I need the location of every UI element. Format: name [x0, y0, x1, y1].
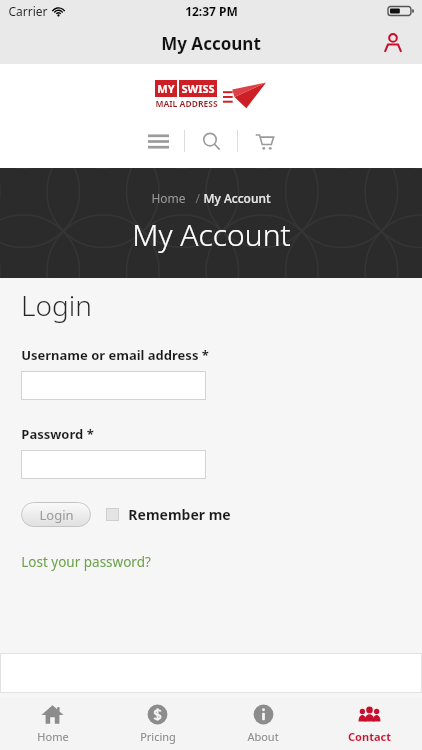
staticText: Carrier [8, 3, 48, 19]
staticText: MAIL ADDRESS [155, 98, 218, 110]
button[interactable]: Remember me [128, 505, 231, 524]
button[interactable]: Lost your password? [21, 553, 151, 571]
staticText: Login [21, 286, 92, 324]
button[interactable]: Home [151, 190, 186, 206]
button[interactable]: Cart [238, 124, 290, 158]
staticText: MY [157, 81, 175, 96]
staticText: / [186, 190, 203, 206]
staticText: 12:37 PM [185, 3, 238, 19]
staticText: Password * [21, 425, 94, 443]
button[interactable] [21, 450, 206, 479]
staticText: My Account [161, 32, 261, 55]
staticText: Lost your password? [21, 553, 151, 571]
button[interactable]: Login [21, 502, 91, 527]
staticText: Login [39, 506, 74, 524]
button[interactable] [106, 508, 119, 521]
button[interactable]: Account [378, 28, 408, 58]
button[interactable]: Contact [316, 697, 422, 750]
staticText: SWISS [181, 81, 215, 96]
staticText: Home [37, 729, 69, 744]
button[interactable]: About [210, 697, 316, 750]
button[interactable]: Menu [132, 124, 184, 158]
button[interactable]: Pricing [105, 697, 210, 750]
staticText: Home [151, 190, 186, 206]
button[interactable] [21, 371, 206, 400]
staticText: Remember me [128, 505, 231, 524]
staticText: My Account [203, 190, 271, 206]
staticText: Contact [348, 729, 391, 744]
staticText: About [247, 729, 279, 744]
staticText: My Account [132, 214, 291, 255]
button[interactable]: Search [185, 124, 237, 158]
button[interactable]: Home [0, 697, 105, 750]
staticText: Username or email address * [21, 346, 209, 364]
staticText: Pricing [140, 729, 176, 744]
